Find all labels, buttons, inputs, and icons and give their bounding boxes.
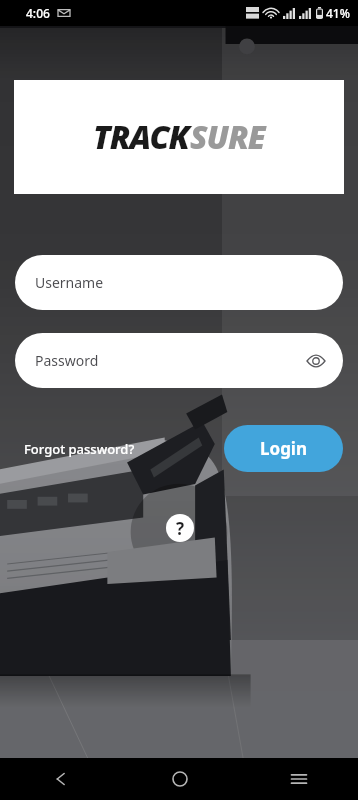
button[interactable]: Login: [224, 425, 343, 472]
staticText: Password: [35, 351, 99, 370]
button[interactable]: Back: [0, 758, 120, 800]
button[interactable]: Home: [120, 758, 239, 800]
staticText: Login: [260, 437, 308, 460]
staticText: SURE: [190, 115, 265, 159]
staticText: ?: [176, 517, 185, 540]
staticText: 41%: [326, 5, 350, 21]
button[interactable]: Show password: [303, 348, 329, 374]
button[interactable]: Forgot password?: [20, 436, 139, 462]
staticText: TRACK: [93, 115, 190, 159]
button[interactable]: Recents: [239, 758, 358, 800]
button[interactable]: Password: [15, 333, 343, 388]
staticText: Username: [35, 273, 104, 292]
button[interactable]: Username: [15, 255, 343, 310]
staticText: Forgot password?: [24, 440, 135, 458]
button[interactable]: Help: [166, 514, 194, 542]
staticText: 4:06: [26, 5, 50, 21]
